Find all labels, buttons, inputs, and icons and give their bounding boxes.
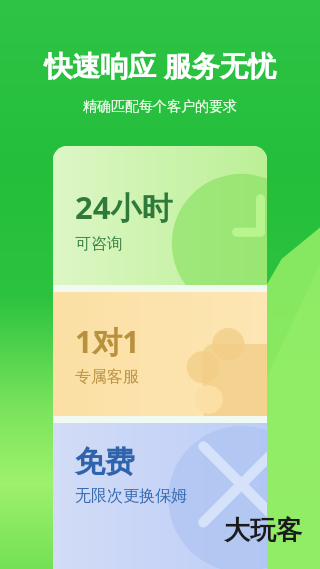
staticText: 专属客服 (75, 367, 139, 387)
staticText: 精确匹配每个客户的要求 (83, 98, 237, 116)
staticText: 可咨询 (75, 234, 123, 254)
staticText: 1对1 (75, 321, 140, 362)
other: Watermark (224, 514, 302, 547)
staticText: 免费 (75, 443, 135, 481)
button[interactable]: 免费 (53, 423, 267, 569)
staticText: 大玩客 (224, 514, 302, 547)
staticText: 快速响应 服务无忧 (44, 46, 276, 84)
button[interactable]: 24小时 (53, 146, 267, 285)
button[interactable]: 1对1 (53, 292, 267, 416)
staticText: 24小时 (75, 186, 173, 228)
staticText: 无限次更换保姆 (75, 486, 187, 506)
